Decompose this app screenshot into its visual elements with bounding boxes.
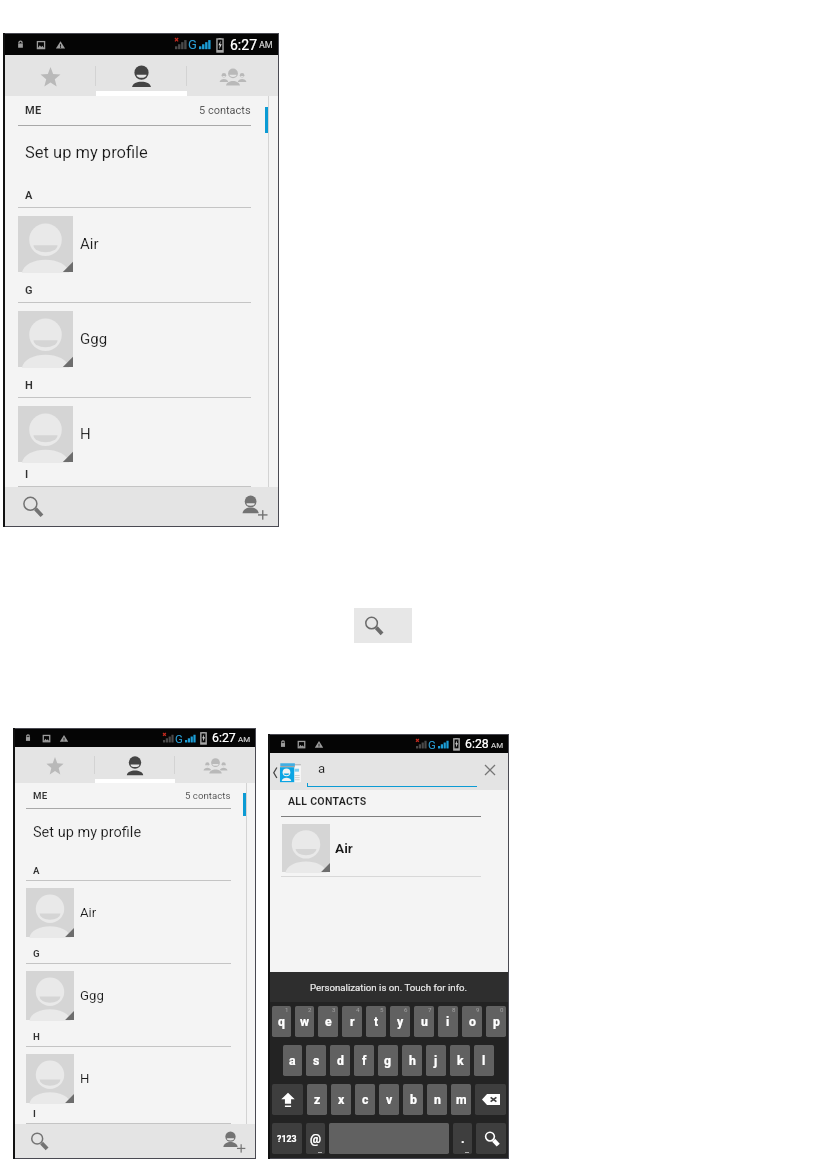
staticText: v (386, 1093, 393, 1107)
staticText: w (300, 1015, 310, 1029)
button[interactable]: k (450, 1045, 470, 1076)
staticText: H (33, 1031, 40, 1042)
button[interactable]: Personalization is on. Touch for info. (270, 972, 508, 1002)
button[interactable]: Air (15, 888, 255, 937)
button[interactable]: t (366, 1006, 386, 1037)
staticText: y (397, 1015, 404, 1029)
staticText: G (33, 948, 40, 959)
staticText: s (313, 1054, 320, 1068)
staticText: k (457, 1054, 464, 1068)
staticText: a (289, 1054, 296, 1068)
button[interactable]: . (453, 1123, 472, 1154)
button[interactable]: Search (15, 1124, 135, 1158)
button[interactable]: b (403, 1084, 423, 1115)
button[interactable]: H (15, 1054, 255, 1103)
button[interactable]: j (426, 1045, 446, 1076)
button[interactable]: q (272, 1006, 291, 1037)
staticText: ALL CONTACTS (288, 795, 367, 807)
staticText: G (428, 738, 436, 751)
button[interactable]: d (330, 1045, 350, 1076)
staticText: I (25, 468, 29, 481)
staticText: q (278, 1015, 285, 1029)
button[interactable]: x (331, 1084, 351, 1115)
staticText: 3 (332, 1006, 336, 1013)
button[interactable]: Set up my profile (15, 809, 255, 855)
staticText: A (33, 865, 40, 876)
staticText: o (469, 1015, 476, 1029)
button[interactable] (272, 1084, 303, 1115)
button[interactable]: g (378, 1045, 398, 1076)
staticText: ME (33, 790, 48, 801)
staticText: d (337, 1054, 344, 1068)
staticText: l (482, 1054, 486, 1068)
button[interactable]: Search (5, 487, 141, 526)
button[interactable]: Air (5, 216, 278, 272)
button[interactable]: u (414, 1006, 434, 1037)
button[interactable]: Contacts (95, 747, 175, 783)
staticText: z (314, 1093, 321, 1107)
button[interactable]: p (486, 1006, 506, 1037)
staticText: u (421, 1015, 428, 1029)
button[interactable]: c (355, 1084, 375, 1115)
staticText: 5 (380, 1006, 384, 1013)
button[interactable]: Back (270, 757, 307, 787)
button[interactable]: Favorites (5, 55, 96, 96)
button[interactable]: Air (270, 824, 508, 877)
staticText: Set up my profile (25, 143, 148, 162)
staticText: G (25, 284, 33, 297)
button[interactable]: w (295, 1006, 314, 1037)
button[interactable]: Groups (187, 55, 278, 96)
staticText: AM (238, 735, 251, 744)
staticText: A (25, 189, 33, 202)
staticText: a (318, 761, 326, 776)
button[interactable]: Ggg (5, 311, 278, 367)
staticText: i (446, 1015, 450, 1029)
staticText: H (25, 379, 33, 392)
staticText: Personalization is on. Touch for info. (310, 982, 468, 993)
button[interactable]: o (462, 1006, 482, 1037)
button[interactable]: n (427, 1084, 447, 1115)
button[interactable]: z (307, 1084, 327, 1115)
button[interactable]: r (342, 1006, 362, 1037)
button[interactable]: Favorites (15, 747, 95, 783)
button[interactable]: H (5, 406, 278, 462)
button[interactable]: l (474, 1045, 494, 1076)
button[interactable]: f (354, 1045, 374, 1076)
button[interactable]: m (451, 1084, 471, 1115)
staticText: 6 (404, 1006, 408, 1013)
button[interactable]: Ggg (15, 971, 255, 1020)
staticText: 8 (452, 1006, 456, 1013)
button[interactable] (475, 1084, 506, 1115)
button[interactable]: Clear search (477, 759, 503, 785)
staticText: 6:27 (230, 37, 257, 53)
button[interactable]: Groups (175, 747, 255, 783)
button[interactable]: Contacts (96, 55, 187, 96)
button[interactable]: Add contact (141, 487, 278, 526)
staticText: G (175, 732, 183, 745)
staticText: Set up my profile (33, 824, 142, 841)
staticText: e (325, 1015, 332, 1029)
staticText: 2 (308, 1006, 312, 1013)
staticText: . (461, 1132, 465, 1146)
staticText: 7 (428, 1006, 432, 1013)
staticText: 0 (500, 1006, 504, 1013)
button[interactable]: a (283, 1045, 302, 1076)
button[interactable]: s (306, 1045, 326, 1076)
button[interactable]: i (438, 1006, 458, 1037)
button[interactable]: e (318, 1006, 338, 1037)
staticText: j (434, 1054, 438, 1068)
staticText: x (338, 1093, 345, 1107)
button[interactable]: h (402, 1045, 422, 1076)
staticText: AM (259, 40, 273, 51)
button[interactable]: ?123 (272, 1123, 302, 1154)
button[interactable]: Set up my profile (5, 126, 278, 178)
button[interactable]: Search (354, 608, 412, 643)
button[interactable] (476, 1123, 506, 1154)
button[interactable]: @ (306, 1123, 325, 1154)
button[interactable]: Add contact (135, 1124, 255, 1158)
staticText: p (493, 1015, 500, 1029)
button[interactable]: v (379, 1084, 399, 1115)
staticText: Air (335, 840, 353, 856)
button[interactable]: y (390, 1006, 410, 1037)
